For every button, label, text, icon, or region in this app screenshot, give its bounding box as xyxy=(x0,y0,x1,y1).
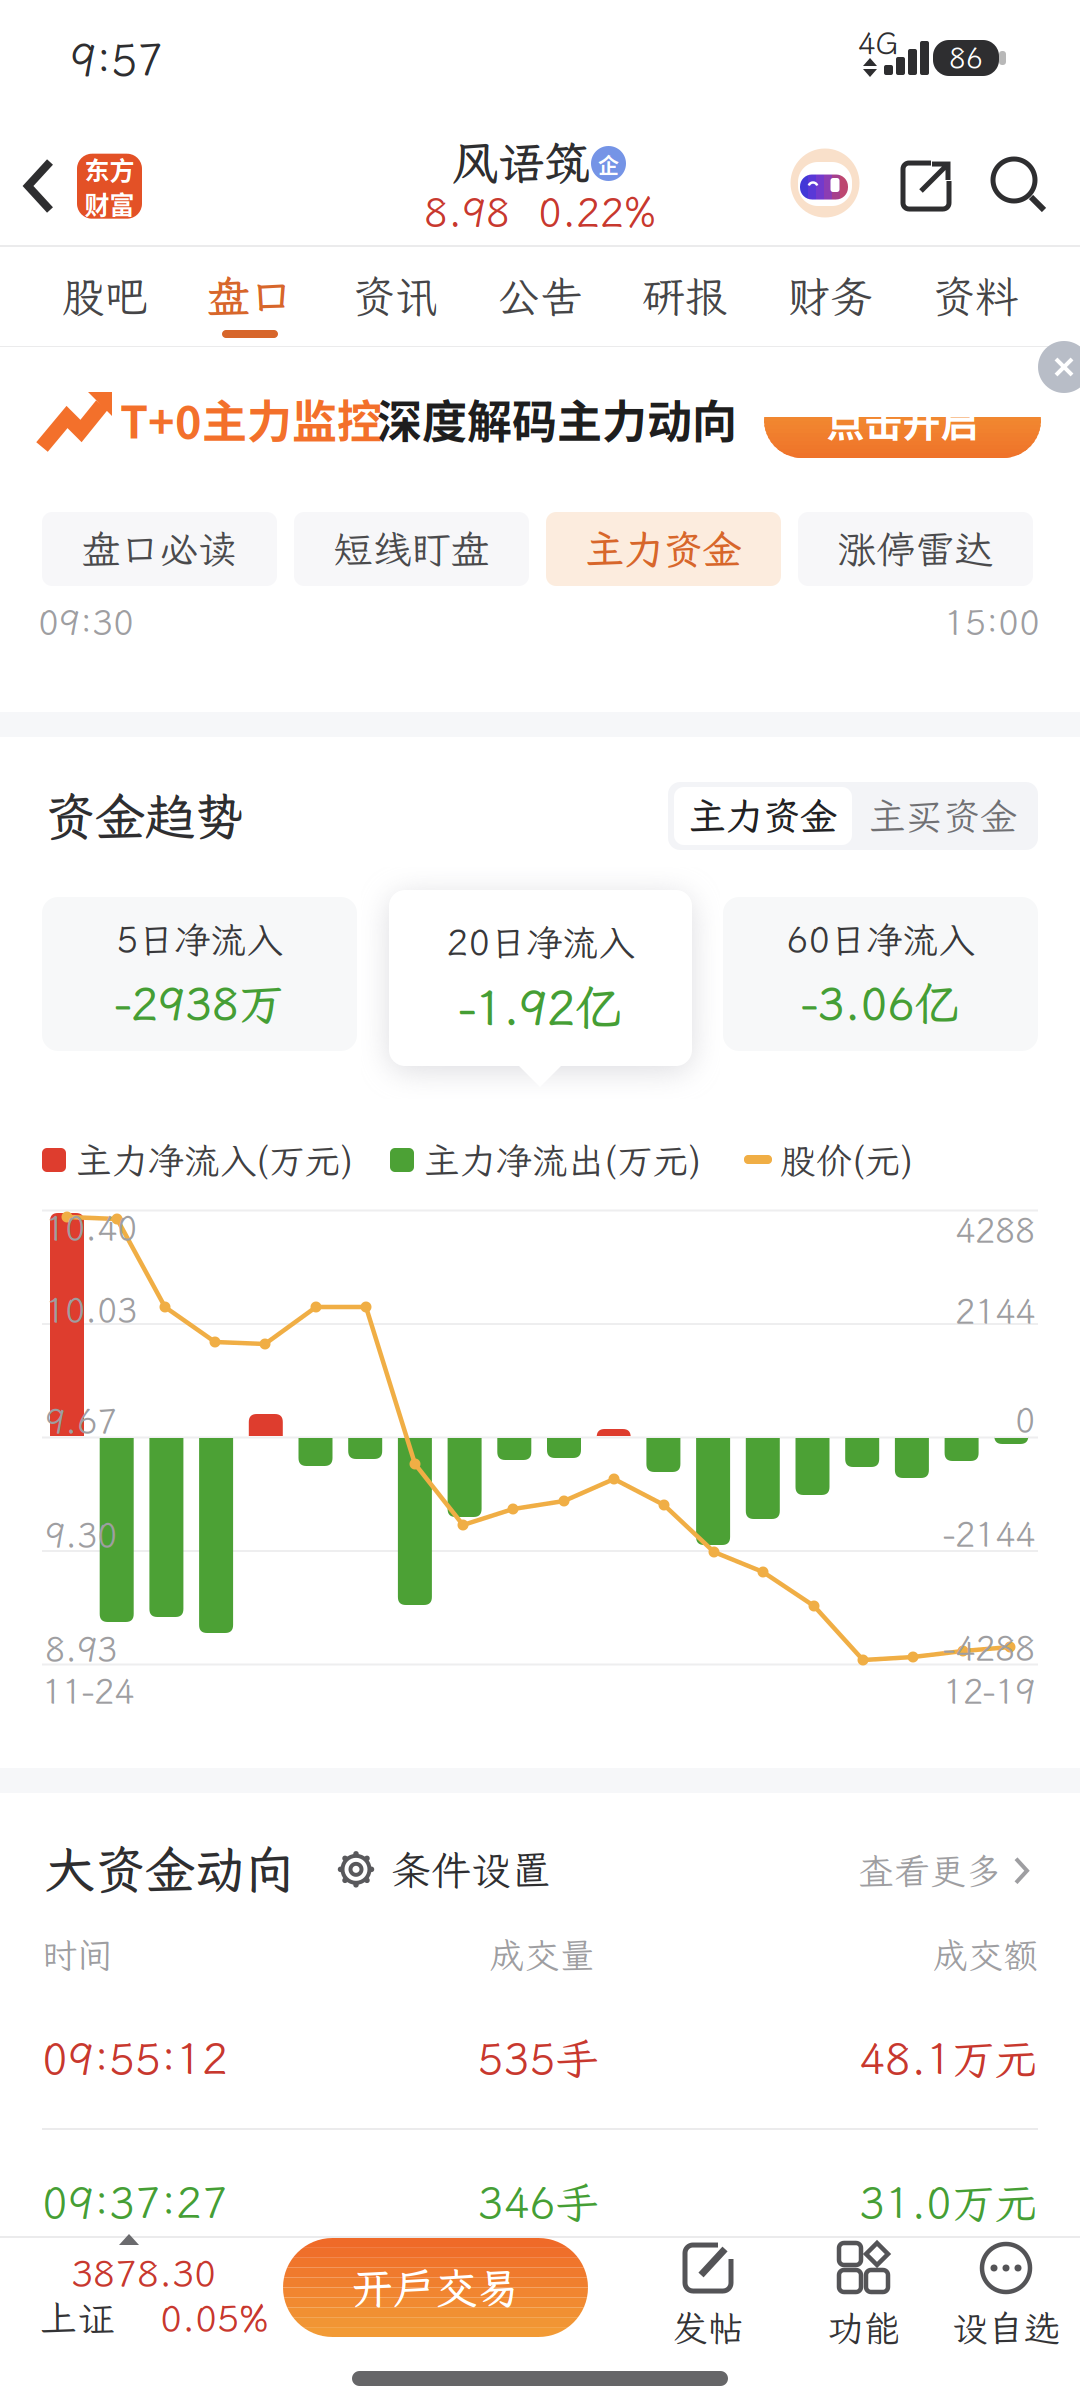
staticText: 公告 xyxy=(497,268,583,324)
staticText: 深度解码主力动向 xyxy=(377,386,737,452)
button[interactable]: 主力资金 xyxy=(546,512,781,586)
button[interactable]: 20日净流入 xyxy=(389,890,692,1066)
staticText: 主力资金 xyxy=(689,792,837,840)
staticText: -1.92亿 xyxy=(459,976,622,1038)
staticText: 功能 xyxy=(828,2304,900,2351)
staticText: 20日净流入 xyxy=(446,918,634,966)
staticText: 企 xyxy=(598,148,619,179)
staticText: 09:37:27 xyxy=(42,2174,228,2230)
staticText: 31.0万元 xyxy=(859,2174,1038,2230)
button[interactable]: 设自选 xyxy=(952,2242,1060,2351)
staticText: 主买资金 xyxy=(869,792,1017,840)
button[interactable]: 功能 xyxy=(828,2242,900,2351)
staticText: 盘口 xyxy=(207,268,293,324)
staticText: 主力资金 xyxy=(585,523,741,575)
button[interactable]: 资讯 xyxy=(325,250,465,342)
staticText: 发帖 xyxy=(672,2304,744,2351)
button[interactable]: 条件设置 xyxy=(337,1843,551,1896)
button[interactable]: 财务 xyxy=(760,250,900,342)
staticText: 0 xyxy=(1015,1398,1035,1442)
button[interactable]: 60日净流入 xyxy=(723,897,1038,1051)
button[interactable]: Search xyxy=(993,159,1045,211)
staticText: 点击开启 xyxy=(826,392,978,447)
staticText: 成交额 xyxy=(933,1932,1038,1978)
staticText: 大资金动向 xyxy=(45,1836,295,1902)
button[interactable]: 盘口 xyxy=(180,250,320,342)
staticText: 成交量 xyxy=(489,1932,594,1978)
staticText: 60日净流入 xyxy=(786,916,974,963)
staticText: 5日净流入 xyxy=(116,916,282,963)
button[interactable]: 涨停雷达 xyxy=(798,512,1033,586)
button[interactable]: 上证指数 xyxy=(38,2234,298,2344)
button[interactable]: 开户交易 xyxy=(283,2238,588,2337)
staticText: 2144 xyxy=(955,1289,1035,1333)
button[interactable]: T+0主力监控 深度解码主力动向 点击开启 xyxy=(0,347,1080,480)
button[interactable]: Back xyxy=(24,158,56,214)
staticText: -3.06亿 xyxy=(801,973,959,1032)
staticText: 9.30 xyxy=(45,1513,117,1557)
button[interactable]: 主买资金 xyxy=(854,787,1032,845)
staticText: 股吧 xyxy=(62,268,148,324)
staticText: -4288 xyxy=(943,1626,1035,1670)
staticText: 09:30 xyxy=(38,599,134,645)
staticText: 条件设置 xyxy=(391,1843,551,1896)
staticText: 9:57 xyxy=(70,30,163,88)
staticText: 0.05% xyxy=(160,2294,269,2342)
staticText: 盘口必读 xyxy=(81,523,237,575)
button[interactable]: 东方财富 xyxy=(77,151,142,221)
staticText: 东方 xyxy=(84,151,134,187)
staticText: 4G xyxy=(857,23,898,63)
staticText: 8.93 xyxy=(45,1627,117,1671)
staticText: 535手 xyxy=(477,2030,598,2086)
staticText: 研报 xyxy=(642,268,728,324)
staticText: 股价(元) xyxy=(780,1136,914,1184)
staticText: 346手 xyxy=(477,2174,598,2230)
staticText: 短线盯盘 xyxy=(333,523,489,575)
staticText: 涨停雷达 xyxy=(837,523,993,575)
button[interactable]: 资料 xyxy=(905,250,1045,342)
staticText: 10.03 xyxy=(45,1288,137,1332)
button[interactable]: 短线盯盘 xyxy=(294,512,529,586)
staticText: -2938万 xyxy=(115,973,284,1032)
staticText: 11-24 xyxy=(42,1669,134,1713)
staticText: 15:00 xyxy=(944,599,1040,645)
button[interactable]: Close banner xyxy=(1038,341,1080,393)
staticText: 8.98 0.22% xyxy=(424,186,656,238)
staticText: 86 xyxy=(949,40,983,76)
button[interactable]: 发帖 xyxy=(672,2242,744,2351)
staticText: 12-19 xyxy=(943,1669,1035,1713)
button[interactable]: 公告 xyxy=(470,250,610,342)
staticText: -2144 xyxy=(943,1512,1035,1556)
staticText: T+0主力监控 xyxy=(120,386,382,452)
button[interactable]: 5日净流入 xyxy=(42,897,357,1051)
staticText: 财富 xyxy=(84,185,134,221)
button[interactable]: 股吧 xyxy=(35,250,175,342)
staticText: 4288 xyxy=(955,1208,1035,1252)
staticText: 资料 xyxy=(932,268,1018,324)
staticText: 查看更多 xyxy=(858,1847,1002,1894)
staticText: 资金趋势 xyxy=(45,783,245,849)
staticText: 上证 xyxy=(40,2294,114,2342)
staticText: 9.67 xyxy=(45,1399,117,1443)
button[interactable]: Share xyxy=(900,160,952,212)
staticText: 时间 xyxy=(42,1932,112,1978)
staticText: 09:55:12 xyxy=(42,2030,228,2086)
staticText: 主力净流入(万元) xyxy=(76,1136,354,1184)
staticText: 设自选 xyxy=(952,2304,1060,2351)
button[interactable]: AI assistant xyxy=(790,148,860,218)
button[interactable]: 查看更多 xyxy=(858,1847,1032,1894)
staticText: 风语筑 xyxy=(452,132,590,192)
staticText: 财务 xyxy=(787,268,873,324)
staticText: 开户交易 xyxy=(351,2260,519,2315)
button[interactable]: 研报 xyxy=(615,250,755,342)
staticText: 资讯 xyxy=(352,268,438,324)
staticText: 3878.30 xyxy=(71,2249,216,2297)
button[interactable]: 主力资金 xyxy=(674,787,852,845)
button[interactable]: 盘口必读 xyxy=(42,512,277,586)
staticText: 10.40 xyxy=(45,1206,137,1250)
staticText: 主力净流出(万元) xyxy=(424,1136,702,1184)
staticText: 48.1万元 xyxy=(859,2030,1038,2086)
